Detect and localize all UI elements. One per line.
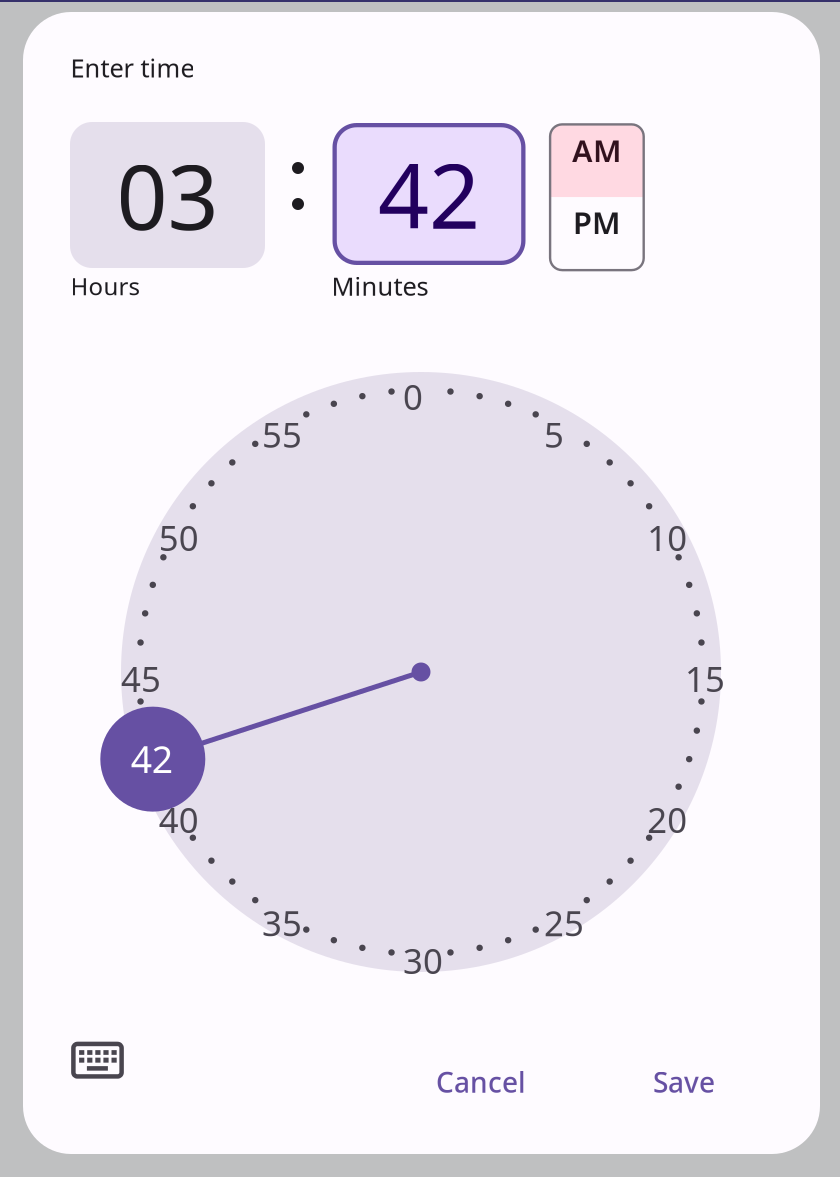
staticText: 30 [403,937,443,984]
button[interactable]: Minutes clock dial, 42 minutes selected [121,372,721,972]
staticText: 42 [378,133,480,255]
staticText: Enter time [70,50,194,85]
staticText: 50 [159,514,199,561]
button[interactable]: 15 [685,655,725,702]
staticText: Hours [70,270,139,302]
button[interactable]: 42 [335,125,523,263]
staticText: 35 [262,899,302,946]
staticText: 40 [159,796,199,843]
staticText: 5 [544,411,564,458]
staticText: Save [653,1063,715,1101]
button[interactable]: AM [550,124,644,197]
button[interactable]: 45 [121,655,161,702]
button[interactable]: 25 [544,899,584,946]
staticText: Minutes [331,269,428,303]
button[interactable]: 10 [647,514,687,561]
staticText: PM [573,202,620,243]
button[interactable]: 0 [403,373,443,420]
staticText: 20 [647,796,687,843]
button[interactable]: 35 [262,899,302,946]
button[interactable]: 50 [159,514,199,561]
button[interactable]: 03 [70,122,265,268]
button[interactable]: 30 [403,937,443,984]
button[interactable]: PM [550,197,644,270]
button[interactable]: Cancel [416,1056,546,1108]
button[interactable]: 40 [159,796,199,843]
staticText: AM [572,130,621,171]
staticText: 03 [116,134,218,256]
staticText: 45 [121,655,161,702]
button[interactable]: 55 [262,411,302,458]
staticText: 10 [647,514,687,561]
staticText: 15 [685,655,725,702]
staticText: 25 [544,899,584,946]
button[interactable]: 20 [647,796,687,843]
staticText: 0 [403,373,423,420]
staticText: 42 [131,733,173,784]
button[interactable]: 5 [544,411,584,458]
staticText: 55 [262,411,302,458]
button[interactable]: Switch to keyboard input [62,1032,132,1088]
button[interactable]: Save [629,1056,739,1108]
staticText: Cancel [436,1063,526,1101]
